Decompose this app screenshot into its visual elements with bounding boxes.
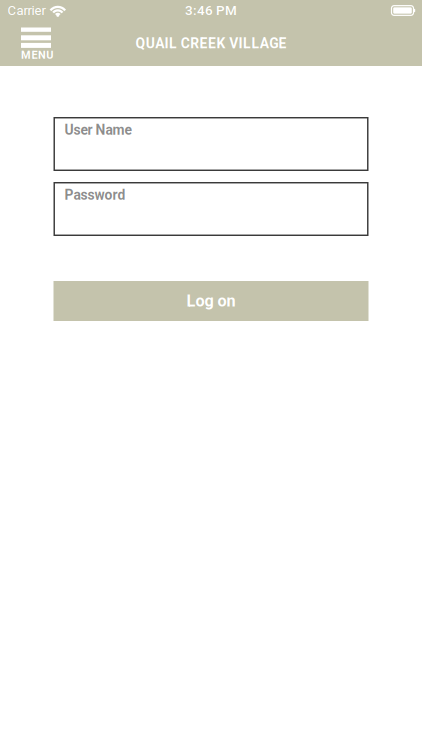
staticText: Password: [64, 187, 125, 203]
staticText: User Name: [64, 122, 131, 138]
staticText: QUAIL CREEK VILLAGE: [135, 35, 287, 52]
button[interactable]: Menu: [0, 21, 63, 65]
button[interactable]: Log on: [53, 281, 368, 321]
staticText: 3:46 PM: [185, 3, 237, 18]
staticText: MENU: [21, 48, 53, 61]
staticText: Log on: [186, 291, 235, 311]
staticText: Carrier: [8, 3, 46, 18]
